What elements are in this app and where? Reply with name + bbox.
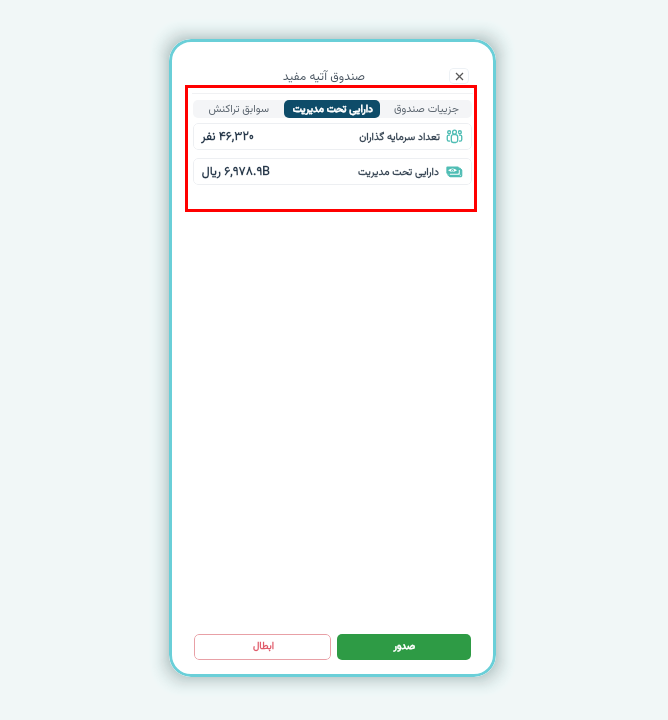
- button[interactable]: دارایی تحت مدیریت: [193, 158, 472, 185]
- button[interactable]: صدور: [337, 634, 471, 660]
- button[interactable]: سوابق تراکنش: [193, 100, 284, 118]
- button[interactable]: جزییات صندوق: [380, 100, 472, 118]
- button[interactable]: تعداد سرمایه گذاران: [193, 123, 472, 150]
- staticText: صندوق آتیه مفید: [282, 67, 365, 86]
- staticText: دارایی تحت مدیریت: [357, 164, 439, 180]
- staticText: صدور: [393, 639, 415, 655]
- staticText: تعداد سرمایه گذاران: [359, 129, 440, 145]
- button[interactable]: ابطال: [194, 634, 331, 660]
- button[interactable]: دارایی تحت مدیریت: [284, 100, 380, 118]
- button[interactable]: Close: [449, 68, 469, 84]
- staticText: ۶,۹۷۸.۹B ریال: [201, 162, 270, 181]
- staticText: سوابق تراکنش: [208, 101, 269, 118]
- staticText: جزییات صندوق: [394, 101, 459, 118]
- staticText: ۴۶,۳۲۰ نفر: [201, 127, 254, 146]
- staticText: دارایی تحت مدیریت: [292, 101, 373, 117]
- staticText: ابطال: [252, 639, 274, 655]
